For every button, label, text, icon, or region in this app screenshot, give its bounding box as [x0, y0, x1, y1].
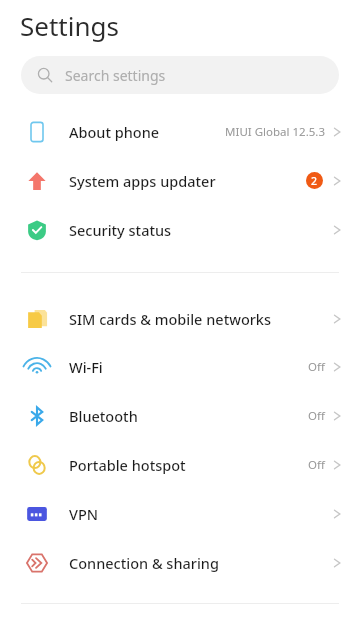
staticText: Security status — [69, 220, 172, 240]
staticText: Off — [308, 359, 325, 375]
button[interactable]: Bluetooth — [0, 391, 360, 440]
button[interactable]: SIM cards & mobile networks — [0, 294, 360, 343]
button[interactable]: Connection & sharing — [0, 538, 360, 587]
button[interactable]: VPN — [0, 489, 360, 538]
button[interactable]: Security status — [0, 205, 360, 254]
staticText: Settings — [20, 8, 119, 43]
button[interactable]: Search settings — [21, 56, 339, 94]
staticText: About phone — [69, 122, 160, 142]
button[interactable]: System apps updater — [0, 156, 360, 205]
staticText: Off — [308, 457, 325, 473]
staticText: SIM cards & mobile networks — [69, 309, 272, 329]
button[interactable]: Portable hotspot — [0, 440, 360, 489]
staticText: VPN — [69, 504, 99, 524]
staticText: Wi-Fi — [69, 357, 103, 377]
staticText: Bluetooth — [69, 406, 138, 426]
staticText: 2 — [311, 174, 318, 188]
staticText: System apps updater — [69, 171, 216, 191]
button[interactable]: Wi-Fi — [0, 342, 360, 391]
staticText: Portable hotspot — [69, 455, 186, 475]
staticText: MIUI Global 12.5.3 — [225, 124, 325, 140]
button[interactable]: About phone — [0, 107, 360, 156]
staticText: Search settings — [65, 66, 166, 85]
staticText: Connection & sharing — [69, 553, 219, 573]
staticText: Off — [308, 408, 325, 424]
